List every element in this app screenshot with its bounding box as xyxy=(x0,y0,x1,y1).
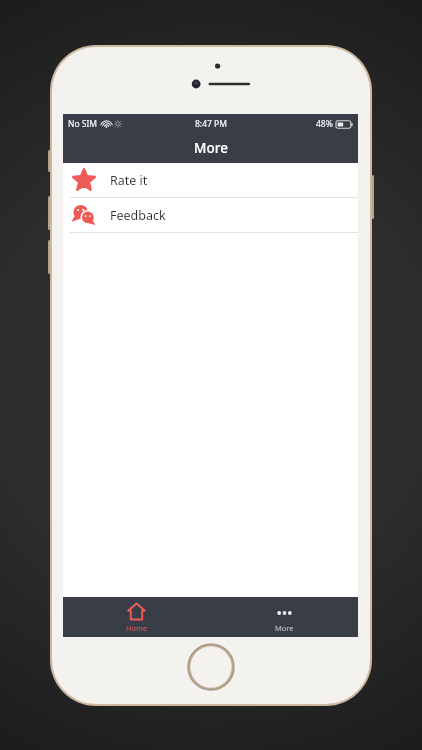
button[interactable]: More xyxy=(210,597,358,637)
button[interactable]: Home xyxy=(63,597,210,637)
staticText: More xyxy=(194,139,228,157)
staticText: Rate it xyxy=(110,172,148,189)
button[interactable]: Rate it xyxy=(63,163,358,197)
staticText: Home xyxy=(126,623,148,633)
staticText: 8:47 PM xyxy=(195,118,227,130)
staticText: No SIM xyxy=(68,118,98,130)
staticText: 48% xyxy=(316,118,333,130)
button[interactable]: Feedback xyxy=(63,198,358,232)
staticText: Feedback xyxy=(110,207,166,224)
staticText: More xyxy=(275,623,294,633)
